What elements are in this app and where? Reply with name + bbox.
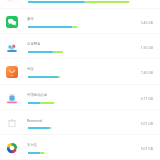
staticText: 6.71 GB: [140, 96, 153, 101]
staticText: 7.46 GB: [140, 70, 153, 75]
staticText: Removed: [27, 118, 42, 123]
button[interactable]: 酷狗音乐: [0, 0, 160, 8]
staticText: 微信: [27, 17, 34, 21]
staticText: 支付宝: [27, 143, 38, 147]
button[interactable]: 支付宝: [0, 134, 160, 159]
staticText: 1.56 GB: [140, 45, 153, 50]
button[interactable]: 淘宝: [0, 58, 160, 83]
staticText: 淘宝: [27, 67, 34, 71]
staticText: 百度网盘: [27, 42, 41, 46]
button[interactable]: 中国移动云盘: [0, 84, 160, 109]
staticText: 中国移动云盘: [27, 93, 48, 97]
staticText: 5.01 GB: [140, 121, 153, 126]
other: Removed: [6, 117, 18, 129]
button[interactable]: 百度网盘: [0, 33, 160, 58]
button[interactable]: Removed: [0, 109, 160, 134]
button[interactable]: 微信: [0, 8, 160, 33]
staticText: 5.46 GB: [140, 20, 153, 25]
staticText: 5.01 GB: [140, 146, 153, 151]
